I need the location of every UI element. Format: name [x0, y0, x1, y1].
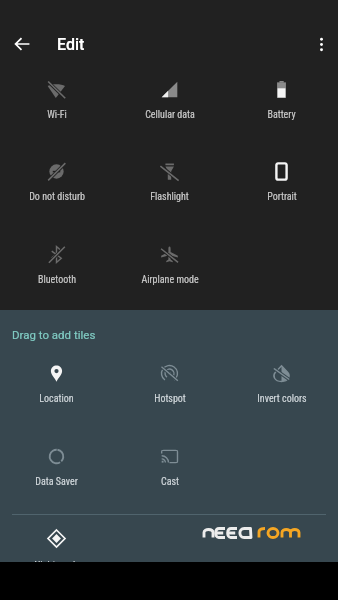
button[interactable]: Invert colors: [225, 350, 338, 430]
staticText: Location: [39, 393, 74, 405]
button[interactable]: Cast: [113, 433, 226, 513]
staticText: Cellular data: [145, 109, 195, 121]
button[interactable]: Do not disturb: [0, 148, 113, 228]
staticText: Edit: [57, 35, 85, 54]
staticText: Cast: [161, 476, 179, 488]
staticText: Do not disturb: [29, 191, 85, 203]
button[interactable]: Airplane mode: [113, 231, 226, 311]
staticText: Airplane mode: [141, 274, 199, 286]
staticText: Bluetooth: [38, 274, 76, 286]
staticText: Flashlight: [150, 191, 189, 203]
staticText: Wi-Fi: [47, 109, 67, 121]
button[interactable]: Wi-Fi: [0, 66, 113, 146]
button[interactable]: More options: [305, 28, 337, 60]
button[interactable]: Portrait: [225, 148, 338, 228]
button[interactable]: Location: [0, 350, 113, 430]
staticText: Data Saver: [35, 476, 78, 488]
button[interactable]: Bluetooth: [0, 231, 113, 311]
button[interactable]: Data Saver: [0, 433, 113, 513]
button[interactable]: Cellular data: [113, 66, 226, 146]
staticText: Invert colors: [257, 393, 307, 405]
button[interactable]: Flashlight: [113, 148, 226, 228]
button[interactable]: Night mode: [0, 515, 113, 595]
staticText: Drag to add tiles: [12, 328, 96, 341]
button[interactable]: Hotspot: [113, 350, 226, 430]
staticText: Battery: [267, 109, 296, 121]
staticText: Night mode: [34, 560, 80, 572]
button[interactable]: Battery: [225, 66, 338, 146]
button[interactable]: Back: [6, 28, 38, 60]
staticText: Portrait: [267, 191, 297, 203]
staticText: Hotspot: [154, 393, 186, 405]
